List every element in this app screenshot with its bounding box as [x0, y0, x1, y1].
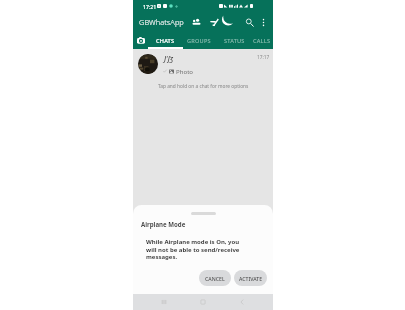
- button[interactable]: Add contact: [188, 14, 204, 30]
- staticText: While Airplane mode is On, you will not …: [146, 238, 242, 260]
- staticText: 17:21: [143, 3, 157, 10]
- button[interactable]: STATUS: [220, 32, 248, 49]
- staticText: GBWhatsApp: [139, 17, 184, 27]
- button[interactable]: CALLS: [248, 32, 276, 49]
- staticText: CANCEL: [205, 275, 225, 282]
- button[interactable]: Home: [193, 294, 213, 310]
- button[interactable]: Recents: [154, 294, 174, 310]
- staticText: CALLS: [253, 37, 271, 45]
- staticText: STATUS: [224, 37, 245, 45]
- button[interactable]: Night mode: [223, 14, 239, 30]
- button[interactable]: CHATS: [151, 32, 179, 49]
- staticText: Photo: [176, 67, 194, 75]
- staticText: J'ʃʒ: [164, 53, 174, 63]
- staticText: 17:17: [257, 54, 270, 61]
- button[interactable]: Search: [241, 14, 257, 30]
- button[interactable]: GROUPS: [185, 32, 213, 49]
- staticText: ACTIVATE: [239, 275, 263, 282]
- button[interactable]: Airplane mode: [206, 14, 222, 30]
- staticText: Airplane Mode: [141, 220, 186, 228]
- button[interactable]: CANCEL: [199, 270, 231, 286]
- button[interactable]: J'ʃʒ: [133, 52, 273, 79]
- button[interactable]: ACTIVATE: [234, 270, 267, 286]
- button[interactable]: More options: [255, 14, 271, 30]
- button[interactable]: Camera: [133, 32, 148, 49]
- staticText: CHATS: [156, 37, 175, 45]
- staticText: GROUPS: [187, 37, 211, 45]
- staticText: Tap and hold on a chat for more options: [158, 83, 249, 90]
